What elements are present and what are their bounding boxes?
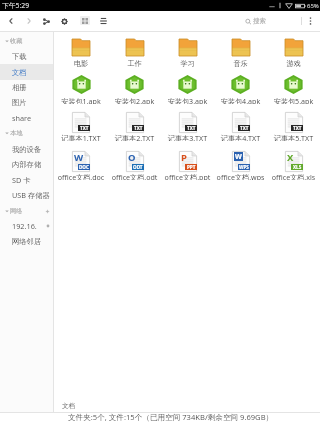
staticText: 下午5:29 — [2, 1, 30, 10]
staticText: 电影 — [54, 59, 108, 67]
staticText: 图片 — [12, 98, 27, 107]
button[interactable]: 安装包4.apk — [214, 96, 267, 104]
button[interactable]: Grid view — [80, 16, 90, 25]
staticText: 我的设备 — [12, 145, 42, 154]
staticText: 游戏 — [267, 59, 320, 67]
staticText: 65% — [307, 2, 319, 10]
button[interactable]: 记事本1.TXT — [54, 133, 108, 141]
staticText: PPT — [187, 164, 196, 170]
staticText: 记事本2.TXT — [108, 133, 161, 141]
staticText: 学习 — [161, 59, 214, 67]
button[interactable]: 学习 — [161, 59, 214, 67]
button[interactable]: office文档.odt — [108, 172, 161, 180]
staticText: office文档.wps — [214, 172, 267, 180]
button[interactable]: 相册 — [0, 79, 53, 95]
staticText: W — [235, 152, 242, 161]
staticText: TXT — [187, 125, 196, 131]
staticText: office文档.ppt — [161, 172, 214, 180]
button[interactable]: office文档.wps — [214, 172, 267, 180]
button[interactable]: 图片 — [0, 94, 53, 110]
staticText: 安装包1.apk — [54, 96, 108, 104]
button[interactable]: 音乐 — [214, 59, 267, 67]
staticText: 安装包4.apk — [214, 96, 267, 104]
staticText: 本地 — [10, 129, 23, 137]
button[interactable]: 文档 — [0, 64, 53, 80]
button[interactable]: 下载 — [0, 48, 53, 64]
button[interactable]: 安装包3.apk — [161, 96, 214, 104]
staticText: DOC — [79, 164, 89, 170]
staticText: 内部存储 — [12, 160, 42, 169]
button[interactable]: 我的设备 — [0, 141, 53, 157]
staticText: P — [181, 151, 187, 164]
staticText: office文档.doc — [54, 172, 108, 180]
staticText: 文档 — [12, 68, 27, 77]
button[interactable]: 网络 — [0, 203, 53, 219]
staticText: XLS — [293, 164, 302, 170]
button[interactable]: 安装包1.apk — [54, 96, 108, 104]
button[interactable]: 搜索 — [241, 11, 299, 31]
staticText: 网络 — [10, 207, 23, 215]
staticText: 记事本4.TXT — [214, 133, 267, 141]
button[interactable]: 192.16. — [0, 218, 53, 234]
staticText: 搜索 — [253, 17, 266, 25]
button[interactable]: SD 卡 — [0, 172, 53, 188]
staticText: W — [74, 151, 84, 164]
button[interactable]: Forward — [23, 15, 35, 27]
button[interactable]: 安装包2.apk — [108, 96, 161, 104]
staticText: TXT — [240, 125, 249, 131]
staticText: 文件夹:5个, 文件:15个（已用空间 734KB/剩余空间 9.69GB） — [68, 412, 274, 422]
button[interactable]: Settings — [58, 15, 70, 27]
button[interactable]: Back — [5, 15, 17, 27]
staticText: 音乐 — [214, 59, 267, 67]
button[interactable]: share — [0, 110, 53, 126]
staticText: USB 存储器 — [12, 190, 50, 200]
staticText: ODT — [133, 164, 143, 170]
staticText: 记事本1.TXT — [54, 133, 108, 141]
button[interactable]: USB 存储器 — [0, 187, 53, 203]
button[interactable]: 记事本2.TXT — [108, 133, 161, 141]
button[interactable]: Share — [40, 15, 52, 27]
button[interactable]: 游戏 — [267, 59, 320, 67]
staticText: share — [12, 113, 32, 123]
staticText: 网络邻居 — [12, 237, 42, 246]
staticText: O — [128, 151, 136, 164]
button[interactable]: 收藏 — [0, 33, 53, 49]
button[interactable]: 电影 — [54, 59, 108, 67]
staticText: X — [287, 151, 294, 164]
button[interactable]: 本地 — [0, 125, 53, 141]
button[interactable]: 工作 — [108, 59, 161, 67]
button[interactable]: 记事本3.TXT — [161, 133, 214, 141]
button[interactable]: office文档.xls — [267, 172, 320, 180]
staticText: 下载 — [12, 52, 27, 61]
button[interactable]: 网络邻居 — [0, 233, 53, 249]
button[interactable]: office文档.ppt — [161, 172, 214, 180]
staticText: TXT — [80, 125, 89, 131]
staticText: TXT — [134, 125, 143, 131]
button[interactable]: More options — [304, 15, 316, 27]
staticText: office文档.odt — [108, 172, 161, 180]
staticText: office文档.xls — [267, 172, 320, 180]
staticText: WPS — [239, 164, 249, 170]
staticText: TXT — [293, 125, 302, 131]
staticText: 文档 — [62, 402, 75, 410]
staticText: SD 卡 — [12, 175, 31, 185]
button[interactable]: 内部存储 — [0, 156, 53, 172]
button[interactable]: 记事本5.TXT — [267, 133, 320, 141]
staticText: 收藏 — [10, 37, 23, 45]
button[interactable]: 记事本4.TXT — [214, 133, 267, 141]
button[interactable]: List view — [97, 15, 109, 27]
staticText: 记事本3.TXT — [161, 133, 214, 141]
staticText: 192.16. — [12, 221, 37, 231]
staticText: 记事本5.TXT — [267, 133, 320, 141]
staticText: 安装包2.apk — [108, 96, 161, 104]
button[interactable]: office文档.doc — [54, 172, 108, 180]
staticText: 工作 — [108, 59, 161, 67]
staticText: 安装包5.apk — [267, 96, 320, 104]
staticText: 安装包3.apk — [161, 96, 214, 104]
button[interactable]: 安装包5.apk — [267, 96, 320, 104]
staticText: 相册 — [12, 83, 27, 92]
